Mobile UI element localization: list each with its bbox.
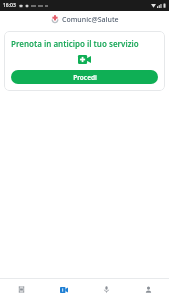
button[interactable]: Prenotazioni [0,279,43,300]
staticText: Prenota in anticipo il tuo servizio [11,38,139,49]
button[interactable]: Videoconsulto [43,279,85,300]
button[interactable]: Messaggi [85,279,127,300]
other: Videoconsulto [78,55,91,64]
staticText: 16:03 [3,2,16,9]
staticText: Procedi [73,73,97,82]
button[interactable]: Profilo [127,279,169,300]
staticText: Comunic@Salute [62,15,119,25]
button[interactable]: Procedi [11,70,158,84]
